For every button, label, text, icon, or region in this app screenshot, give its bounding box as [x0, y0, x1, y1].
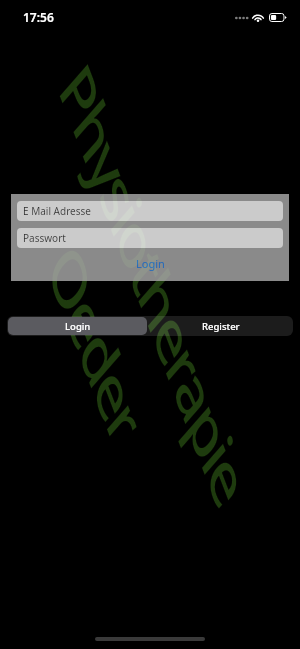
button[interactable]: E Mail Adresse	[17, 201, 283, 221]
staticText: Login	[65, 320, 91, 333]
staticText: Register	[202, 320, 240, 333]
button[interactable]: Login	[8, 317, 147, 335]
button[interactable]: Passwort	[17, 228, 283, 248]
staticText: Passwort	[23, 231, 66, 245]
button[interactable]: Login	[136, 256, 165, 271]
staticText: E Mail Adresse	[23, 204, 91, 218]
staticText: 17:56	[23, 9, 54, 25]
button[interactable]: Register	[149, 317, 292, 335]
